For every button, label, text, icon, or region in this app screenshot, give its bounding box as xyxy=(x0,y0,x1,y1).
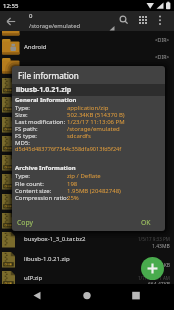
staticText: 1/23/17 11:13:06 PM xyxy=(67,118,125,126)
staticText: 0 xyxy=(29,12,33,20)
staticText: libusb-1.0.21.zip xyxy=(24,255,70,263)
staticText: /storage/emulated xyxy=(29,22,81,30)
staticText: zip / Deflate xyxy=(67,172,101,180)
staticText: Android xyxy=(24,43,47,51)
staticText: 1/5/17 9:33 PM xyxy=(138,236,170,242)
staticText: busybox-1_3_0.tar.bz2 xyxy=(24,235,86,243)
staticText: Copy xyxy=(17,218,33,227)
staticText: d5d45d483776f7344c358dfa9013fd5f24f xyxy=(15,145,122,153)
staticText: libusb-1.0.21.zip xyxy=(16,85,72,95)
staticText: /storage/emulated xyxy=(67,125,120,133)
staticText: 12:55 xyxy=(3,2,19,10)
staticText: 1.43MB xyxy=(152,243,170,250)
staticText: uIP.zip xyxy=(24,274,43,282)
staticText: 198 xyxy=(67,180,78,188)
staticText: Content size: xyxy=(15,187,52,195)
staticText: 502.34KB (514370 B) xyxy=(67,111,125,119)
staticText: 664.47KB xyxy=(148,281,170,288)
staticText: OK xyxy=(141,218,151,227)
staticText: Type: xyxy=(15,104,30,112)
staticText: application/zip xyxy=(67,104,109,112)
staticText: Type: xyxy=(15,172,30,180)
staticText: 1.95MB (20482748) xyxy=(67,187,121,195)
staticText: 25% xyxy=(67,194,79,202)
staticText: FS type: xyxy=(15,132,37,140)
staticText: MD5: xyxy=(15,139,30,147)
staticText: File information xyxy=(18,70,79,81)
staticText: General Information xyxy=(15,96,77,104)
staticText: Compression ratio: xyxy=(15,194,69,202)
staticText: File count: xyxy=(15,180,44,188)
staticText: 502.34KB xyxy=(148,262,170,269)
staticText: Last modification: xyxy=(15,118,66,126)
staticText: Archive Information xyxy=(15,164,76,172)
staticText: <DIR> xyxy=(155,54,170,61)
staticText: FS path: xyxy=(15,125,38,133)
staticText: 1/7/17 2:11 AM xyxy=(138,275,170,281)
staticText: <DIR> xyxy=(155,37,170,44)
staticText: sdcardfs xyxy=(67,132,91,140)
staticText: Size: xyxy=(15,111,28,119)
